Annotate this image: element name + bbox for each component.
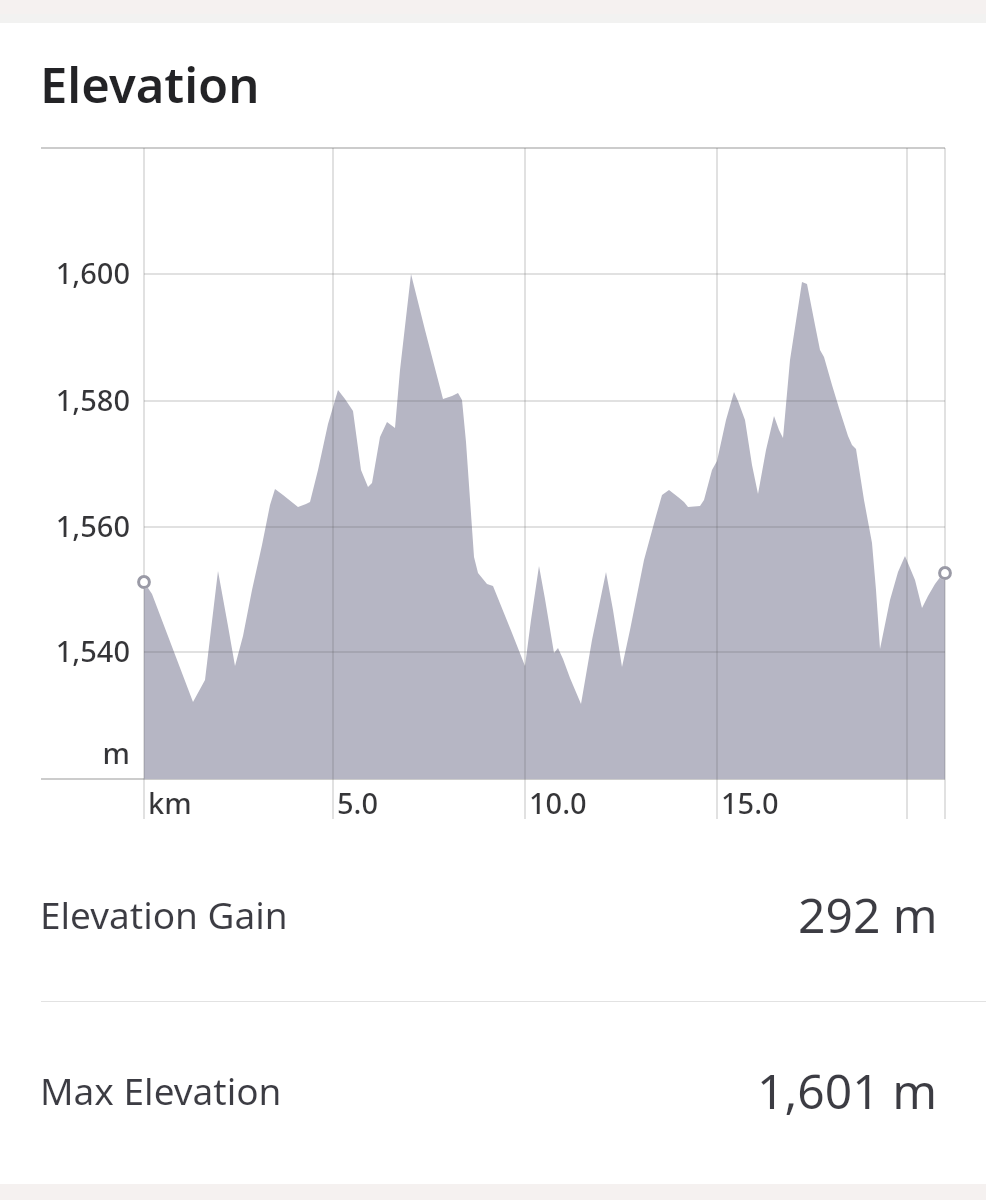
other: Elevation profile chart <box>0 0 986 1200</box>
staticText: 5.0 <box>337 783 379 822</box>
staticText: 292 m <box>798 882 938 947</box>
staticText: 1,600 <box>55 253 130 292</box>
staticText: 10.0 <box>529 783 587 822</box>
staticText: m <box>102 733 130 772</box>
staticText: km <box>148 783 192 822</box>
staticText: 1,601 m <box>757 1058 938 1123</box>
button[interactable]: Elevation Gain <box>0 826 986 1002</box>
staticText: 1,580 <box>55 380 130 419</box>
button[interactable]: Max Elevation <box>0 1002 986 1178</box>
staticText: Elevation <box>40 51 260 118</box>
staticText: 1,540 <box>55 631 130 670</box>
staticText: 1,560 <box>55 506 130 545</box>
staticText: Max Elevation <box>40 1065 282 1115</box>
staticText: Elevation Gain <box>40 889 288 939</box>
staticText: 15.0 <box>721 783 779 822</box>
